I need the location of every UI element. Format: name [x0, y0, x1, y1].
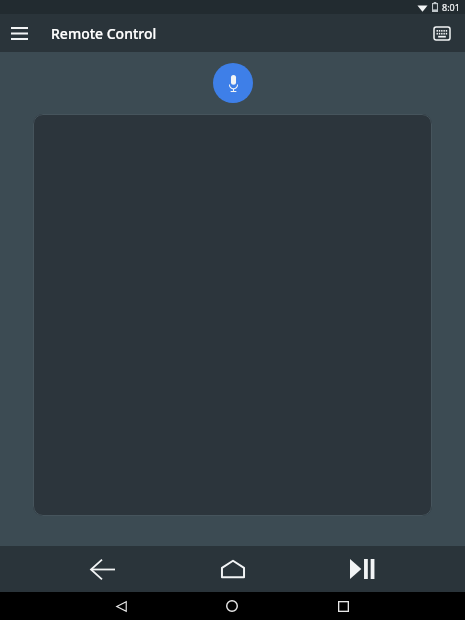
button[interactable]: Open navigation menu: [0, 14, 38, 52]
button[interactable]: Recent apps: [329, 592, 357, 620]
button[interactable]: System back: [107, 592, 135, 620]
button[interactable]: Play or pause: [335, 546, 391, 592]
staticText: 8:01: [442, 1, 460, 13]
button[interactable]: Voice input: [213, 63, 253, 103]
button[interactable]: System home: [218, 592, 246, 620]
button[interactable]: Back: [74, 546, 130, 592]
button[interactable]: Touchpad area: [33, 114, 432, 516]
staticText: Remote Control: [51, 24, 157, 43]
button[interactable]: Home: [205, 546, 261, 592]
button[interactable]: Show keyboard: [423, 14, 461, 52]
